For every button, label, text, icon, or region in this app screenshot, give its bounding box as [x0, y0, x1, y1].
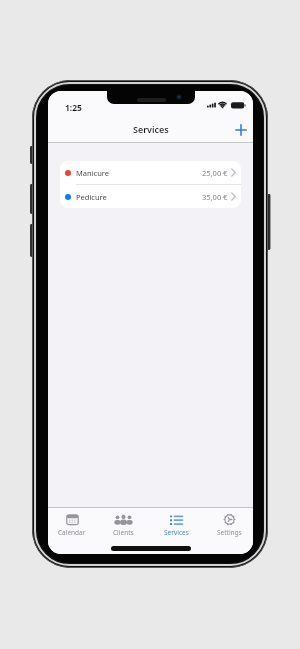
button[interactable]: Manicure: [60, 161, 241, 184]
staticText: 35,00 €: [202, 192, 228, 202]
button[interactable]: Settings: [204, 508, 253, 548]
staticText: Calendar: [58, 528, 86, 537]
button[interactable]: Clients: [98, 508, 149, 548]
staticText: Services: [133, 123, 169, 135]
button[interactable]: [235, 124, 247, 136]
staticText: Settings: [217, 528, 242, 537]
button[interactable]: Services: [151, 508, 202, 548]
staticText: 1:25: [65, 102, 82, 114]
button[interactable]: Pedicure: [60, 185, 241, 208]
staticText: Clients: [113, 528, 134, 537]
staticText: Manicure: [76, 168, 109, 178]
staticText: 25,00 €: [202, 168, 228, 178]
staticText: Services: [164, 528, 189, 537]
button[interactable]: Calendar: [48, 508, 98, 548]
staticText: Pedicure: [76, 192, 107, 202]
